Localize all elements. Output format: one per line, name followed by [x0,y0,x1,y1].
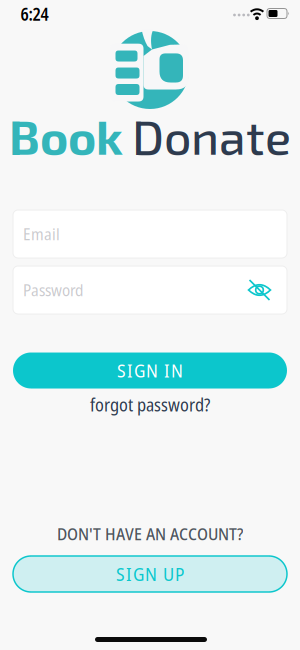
button[interactable]: SIGN UP [13,556,287,592]
staticText: 6:24 [20,2,48,26]
staticText: SIGN IN [117,358,183,383]
staticText: DON'T HAVE AN ACCOUNT? [57,523,243,545]
staticText: Donate [132,107,291,164]
button[interactable]: Show password [244,277,274,303]
button[interactable]: Email [13,210,287,258]
staticText: Email [23,223,60,245]
staticText: Book [9,107,123,164]
button[interactable]: SIGN IN [13,352,287,388]
button[interactable]: forgot password? [90,392,210,417]
button[interactable]: Password [13,266,287,314]
staticText: SIGN UP [116,562,184,586]
staticText: forgot password? [90,392,210,417]
staticText: Password [23,279,83,301]
